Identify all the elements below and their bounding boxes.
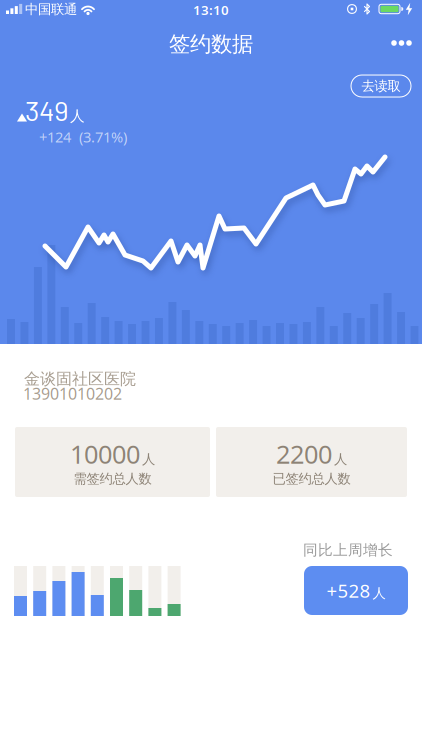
staticText: 已签约总人数 [272,471,350,487]
staticText: 13:10 [193,1,229,19]
button[interactable]: 去读取 [351,75,411,97]
staticText: 人 [372,585,385,601]
staticText: 同比上周增长 [303,541,393,559]
staticText: 349 [25,93,69,127]
staticText: 中国联通 [25,1,77,17]
staticText: 13901010202 [23,383,122,404]
staticText: +528 [326,578,370,603]
staticText: 人 [70,107,85,125]
staticText: 签约数据 [169,31,253,57]
staticText: 10000 [70,437,140,471]
staticText: 需签约总人数 [73,471,151,487]
staticText: 2200 [276,437,332,471]
staticText: +124 (3.71%) [39,127,127,146]
staticText: 人 [142,451,155,467]
staticText: 去读取 [361,78,400,94]
staticText: 人 [334,451,347,467]
staticText: 金谈固社区医院 [24,369,136,389]
button[interactable]: More [384,28,419,58]
button[interactable]: +528 [304,566,408,615]
